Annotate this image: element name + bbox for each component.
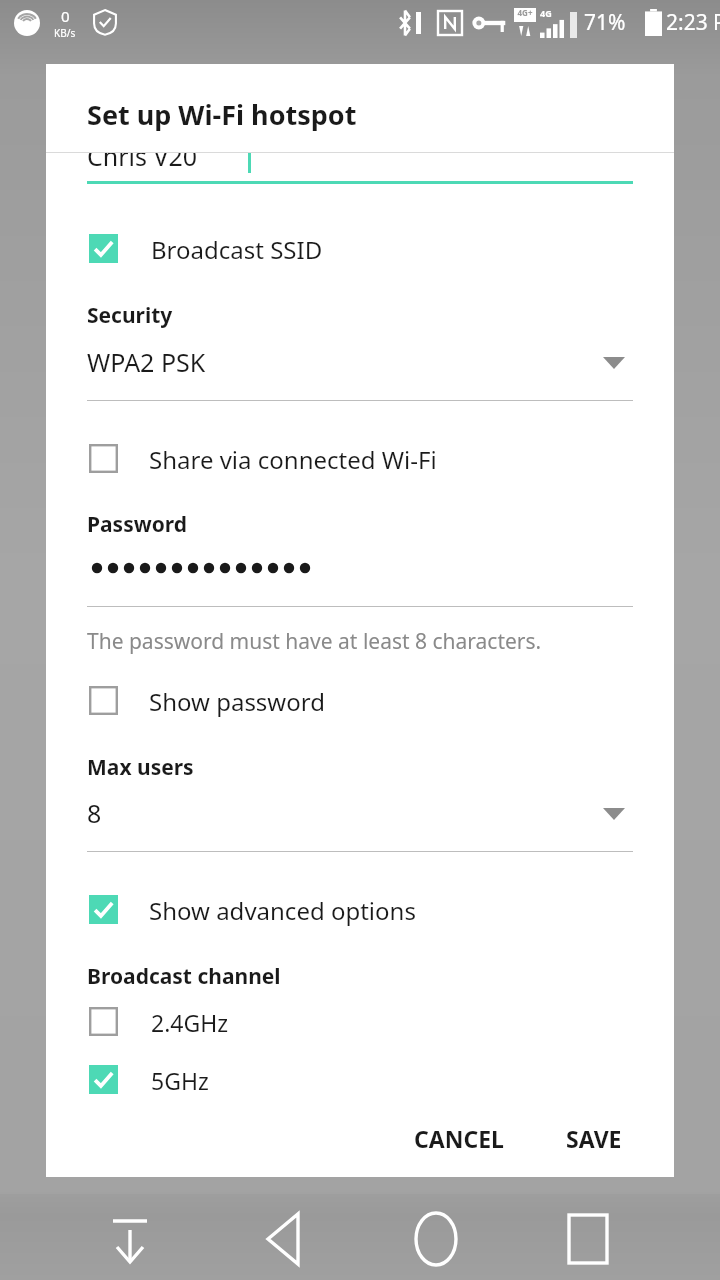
staticText: 4G+ <box>514 7 536 18</box>
staticText: SAVE <box>566 1123 622 1154</box>
button[interactable] <box>46 548 674 596</box>
button[interactable]: Show password <box>46 684 674 718</box>
button[interactable]: 5GHz <box>46 1063 674 1097</box>
button[interactable]: WPA2 PSK <box>46 339 674 391</box>
staticText: The password must have at least 8 charac… <box>87 627 542 656</box>
staticText: WPA2 PSK <box>87 345 206 379</box>
button[interactable]: Broadcast SSID <box>46 232 674 266</box>
staticText: KB/s <box>54 26 76 40</box>
button[interactable]: Back <box>250 1212 318 1266</box>
staticText: 71% <box>584 8 626 37</box>
staticText: Password <box>87 510 188 539</box>
staticText: 2:23 PM <box>666 8 720 37</box>
button[interactable]: 8 <box>46 790 674 842</box>
staticText: 2.4GHz <box>151 1007 229 1038</box>
button[interactable]: Show advanced options <box>46 893 674 927</box>
button[interactable]: Hide keyboard <box>96 1212 164 1266</box>
staticText: Broadcast SSID <box>151 233 323 266</box>
button[interactable]: SAVE <box>544 1110 644 1166</box>
button[interactable]: CANCEL <box>396 1110 521 1166</box>
button[interactable]: Home <box>402 1212 470 1266</box>
staticText: Set up Wi-Fi hotspot <box>87 96 357 133</box>
staticText: 5GHz <box>151 1065 209 1096</box>
staticText: Chris V20 <box>87 153 198 173</box>
staticText: 8 <box>87 796 102 830</box>
button[interactable]: Share via connected Wi-Fi <box>46 442 674 476</box>
staticText: CANCEL <box>414 1123 504 1154</box>
staticText: Show advanced options <box>149 894 416 927</box>
staticText: 4G <box>540 7 552 19</box>
button[interactable]: 2.4GHz <box>46 1005 674 1039</box>
staticText: Security <box>87 301 173 330</box>
button[interactable]: Recent apps <box>554 1212 622 1266</box>
staticText: Broadcast channel <box>87 962 281 991</box>
staticText: Show password <box>149 685 325 718</box>
staticText: 0 <box>61 6 70 26</box>
staticText: Share via connected Wi-Fi <box>149 443 437 476</box>
staticText: Max users <box>87 753 194 782</box>
button[interactable]: Chris V20 <box>87 153 198 173</box>
